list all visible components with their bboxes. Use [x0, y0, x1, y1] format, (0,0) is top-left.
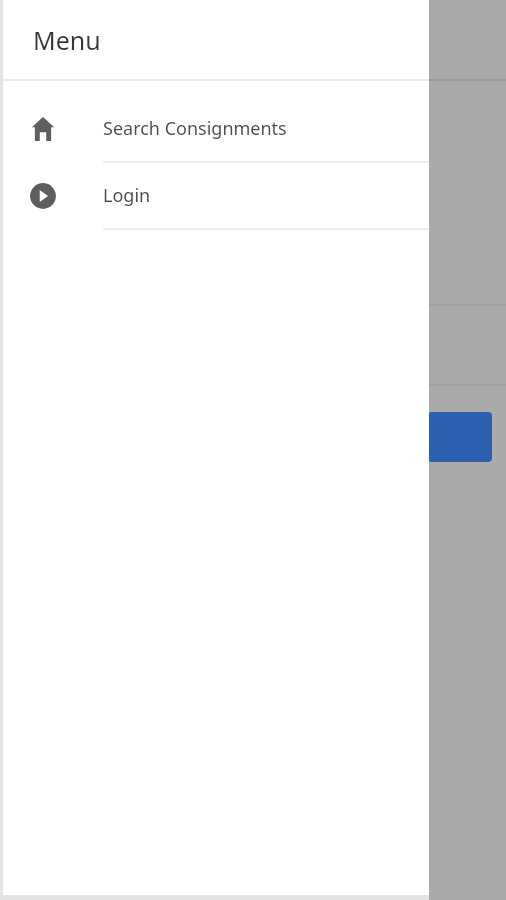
other: Login [29, 182, 57, 210]
button[interactable]: Primary action [428, 412, 492, 462]
button[interactable]: Home [0, 96, 429, 161]
staticText: Menu [33, 23, 101, 57]
other: Home [29, 115, 57, 143]
staticText: Login [103, 183, 151, 208]
staticText: Search Consignments [103, 116, 287, 141]
button[interactable]: Login [0, 163, 429, 228]
